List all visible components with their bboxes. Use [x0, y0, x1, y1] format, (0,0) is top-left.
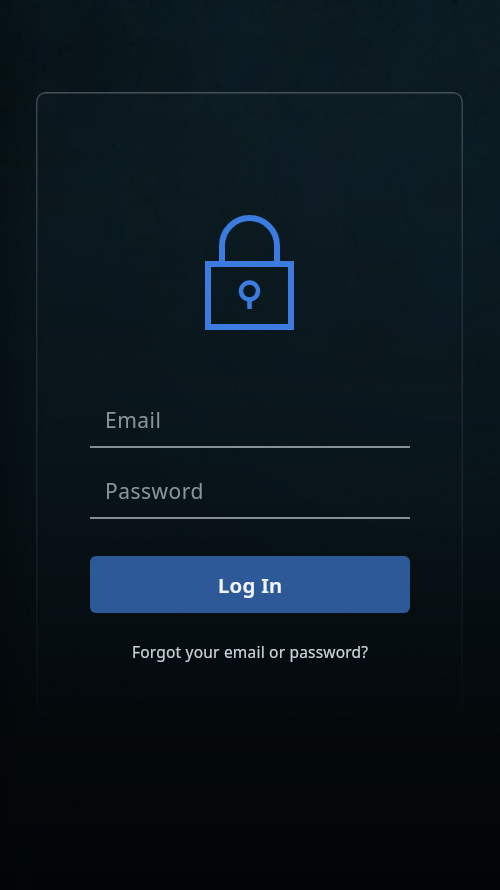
button[interactable]: Email [90, 400, 410, 448]
staticText: Email [105, 406, 162, 435]
button[interactable]: Log In [90, 556, 410, 613]
staticText: Password [105, 477, 204, 506]
button[interactable]: Password [90, 471, 410, 519]
button[interactable]: Forgot your email or password? [90, 637, 410, 665]
staticText: Forgot your email or password? [132, 641, 369, 662]
staticText: Log In [218, 571, 283, 599]
